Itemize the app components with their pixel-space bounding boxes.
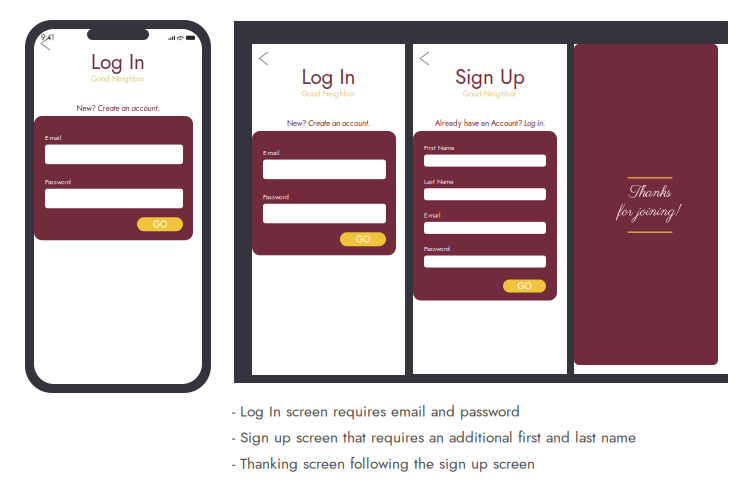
staticText: Last Name [424,177,453,186]
staticText: GO [153,217,167,231]
staticText: Create an account. [308,117,370,129]
button[interactable]: Back [255,48,272,69]
staticText: New? [76,102,95,114]
staticText: Log in. [524,117,545,129]
staticText: - Sign up screen that requires an additi… [232,426,636,448]
staticText: GO [517,279,531,293]
staticText: Log In [301,62,355,92]
staticText: Password [263,192,289,202]
staticText: First Name [424,143,454,153]
button[interactable]: Create an account. [97,102,159,114]
button[interactable]: GO [340,232,386,246]
staticText: E-mail [263,148,280,158]
staticText: Good Neighbor [301,88,355,99]
staticText: Log In [91,47,145,77]
button[interactable]: GO [137,217,183,231]
staticText: Good Neighbor [463,88,517,99]
staticText: 9:41 [41,32,54,43]
button[interactable]: Create an account. [308,117,370,129]
staticText: New? [287,117,306,129]
button[interactable]: Back [37,33,54,54]
staticText: Thanks [629,183,671,203]
staticText: - Log In screen requires email and passw… [232,400,520,422]
button[interactable]: Back [416,48,433,69]
staticText: - Thanking screen following the sign up … [232,452,535,474]
button[interactable]: Log in. [524,117,545,129]
staticText: Good Neighbor [91,73,145,84]
staticText: Password [45,177,71,187]
staticText: E-mail [45,133,62,143]
button[interactable]: GO [503,279,546,292]
staticText: E-mail [424,210,441,220]
staticText: Already have an Account? [435,117,522,129]
staticText: Create an account. [97,102,159,114]
staticText: GO [356,232,370,246]
staticText: Sign Up [455,62,525,92]
staticText: Password [424,244,450,253]
staticText: for joining! [618,201,681,222]
